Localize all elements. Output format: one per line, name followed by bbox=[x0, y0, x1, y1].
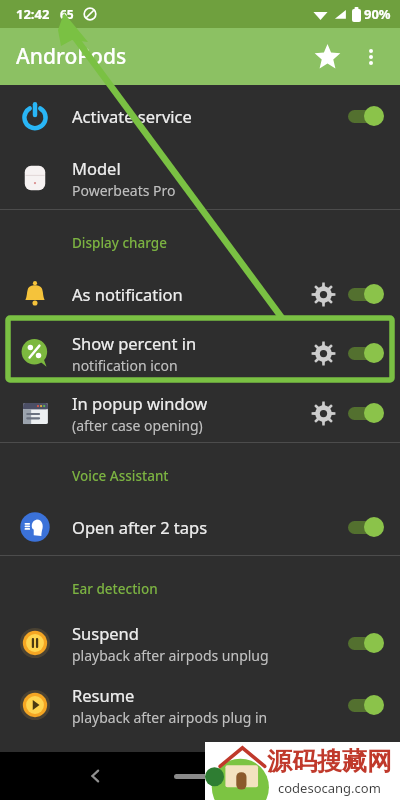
staticText: Open after 2 taps bbox=[72, 516, 208, 538]
staticText: Model bbox=[72, 157, 121, 179]
staticText: Suspend bbox=[72, 622, 139, 644]
staticText: As notification bbox=[72, 283, 183, 305]
staticText: Show percent in bbox=[72, 332, 197, 354]
staticText: In popup window bbox=[72, 392, 208, 414]
staticText: 源码搜藏网 bbox=[267, 746, 392, 777]
staticText: codesocang.com bbox=[278, 779, 381, 797]
button[interactable]: Activate service bbox=[0, 85, 400, 147]
button[interactable]: In popup window bbox=[0, 384, 400, 442]
staticText: Display charge bbox=[72, 234, 167, 252]
button[interactable]: Settings bbox=[302, 332, 344, 374]
button[interactable]: Suspend bbox=[0, 612, 400, 674]
staticText: notification icon bbox=[72, 356, 178, 375]
staticText: playback after airpods plug in bbox=[72, 708, 268, 727]
staticText: 12:42 bbox=[16, 5, 50, 23]
staticText: (after case opening) bbox=[72, 416, 203, 435]
staticText: 65 bbox=[60, 6, 74, 22]
staticText: Activate service bbox=[72, 105, 192, 127]
button[interactable]: As notification bbox=[0, 266, 400, 322]
button[interactable]: Model bbox=[0, 147, 400, 209]
staticText: AndroPods bbox=[16, 42, 127, 71]
button[interactable]: Favorite bbox=[304, 34, 350, 80]
staticText: 90% bbox=[364, 5, 391, 23]
button[interactable]: Back bbox=[76, 756, 116, 796]
button[interactable]: Open after 2 taps bbox=[0, 499, 400, 555]
button[interactable]: Resume bbox=[0, 674, 400, 736]
button[interactable]: Settings bbox=[302, 273, 344, 315]
button[interactable]: More options bbox=[350, 36, 392, 78]
staticText: Powerbeats Pro bbox=[72, 181, 176, 200]
button[interactable]: Settings bbox=[302, 392, 344, 434]
staticText: Voice Assistant bbox=[72, 467, 169, 485]
staticText: Resume bbox=[72, 684, 135, 706]
staticText: playback after airpods unplug bbox=[72, 646, 269, 665]
staticText: Ear detection bbox=[72, 580, 158, 598]
button[interactable]: Show percent in bbox=[0, 322, 400, 384]
